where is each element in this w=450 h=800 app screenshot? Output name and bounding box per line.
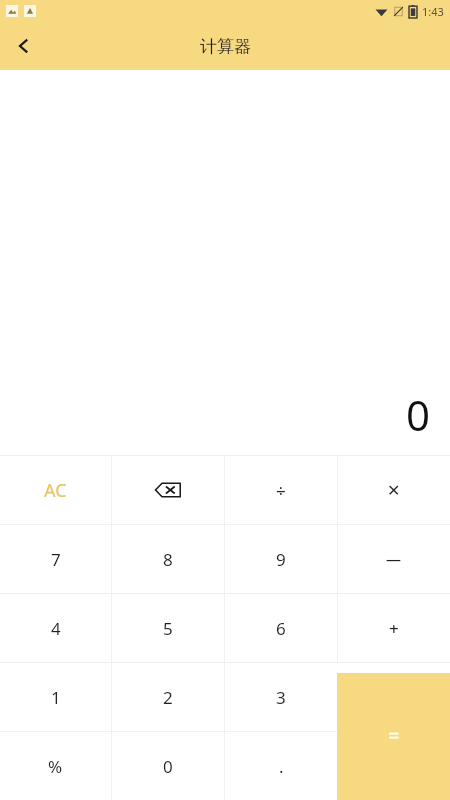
staticText: 1 <box>51 686 61 709</box>
staticText: 7 <box>51 548 61 571</box>
button[interactable]: Back <box>0 22 48 70</box>
button[interactable]: = <box>337 673 450 800</box>
staticText: + <box>389 617 399 640</box>
button[interactable]: 0 <box>112 732 224 800</box>
button[interactable]: 1 <box>0 663 111 731</box>
button[interactable]: + <box>338 594 450 662</box>
button[interactable]: 7 <box>0 525 111 593</box>
staticText: AC <box>44 478 67 503</box>
staticText: 8 <box>163 548 173 571</box>
staticText: 6 <box>276 617 286 640</box>
staticText: ÷ <box>276 479 286 502</box>
button[interactable]: — <box>338 525 450 593</box>
staticText: 4 <box>51 617 61 640</box>
staticText: 计算器 <box>200 36 251 57</box>
button[interactable]: Backspace <box>112 456 224 524</box>
button[interactable]: 8 <box>112 525 224 593</box>
staticText: = <box>388 722 400 749</box>
button[interactable]: ✕ <box>338 456 450 524</box>
staticText: 5 <box>163 617 173 640</box>
button[interactable]: 3 <box>225 663 337 731</box>
staticText: — <box>386 549 402 569</box>
staticText: 1:43 <box>422 4 444 19</box>
staticText: 0 <box>405 386 430 443</box>
staticText: 0 <box>163 755 173 778</box>
button[interactable]: 5 <box>112 594 224 662</box>
button[interactable]: 9 <box>225 525 337 593</box>
button[interactable]: 2 <box>112 663 224 731</box>
button[interactable]: % <box>0 732 111 800</box>
button[interactable]: ÷ <box>225 456 337 524</box>
button[interactable]: 4 <box>0 594 111 662</box>
button[interactable]: . <box>225 732 337 800</box>
staticText: 3 <box>276 686 286 709</box>
staticText: 2 <box>163 686 173 709</box>
staticText: % <box>48 755 63 778</box>
staticText: . <box>279 755 284 778</box>
button[interactable]: 6 <box>225 594 337 662</box>
staticText: ✕ <box>387 481 401 500</box>
staticText: 9 <box>276 548 286 571</box>
button[interactable]: AC <box>0 456 111 524</box>
